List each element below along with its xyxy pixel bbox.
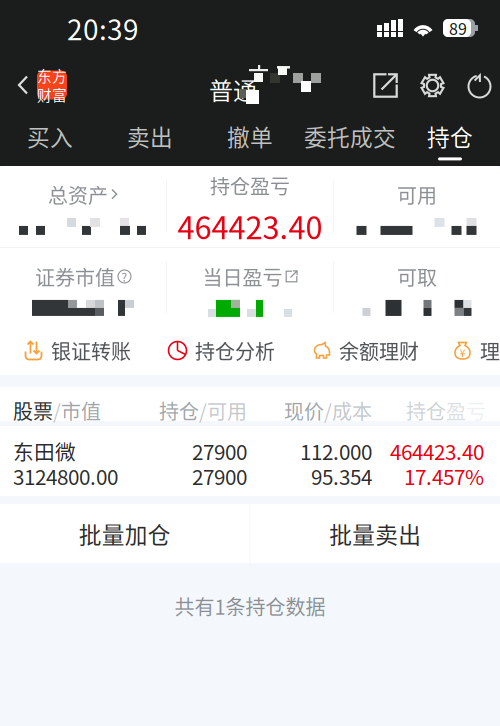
staticText: 亏 — [466, 396, 486, 425]
button[interactable]: 余额理财 — [312, 326, 419, 375]
button[interactable]: ¥ — [453, 326, 500, 375]
staticText: / — [199, 396, 207, 425]
button[interactable]: 可用 — [334, 166, 500, 247]
staticText: 东田微 — [13, 436, 76, 466]
staticText: 持仓 — [427, 120, 473, 152]
button[interactable]: Refresh — [467, 73, 492, 98]
staticText: 批量加仓 — [79, 517, 171, 550]
staticText: 市值 — [61, 396, 101, 425]
button[interactable]: 持仓 — [400, 114, 500, 166]
staticText: 成本 — [332, 396, 372, 425]
staticText: 理财 — [480, 336, 500, 365]
button[interactable]: 持仓 — [127, 396, 247, 425]
staticText: 可用 — [397, 180, 437, 209]
button[interactable]: 批量加仓 — [0, 504, 249, 563]
staticText: 持仓分析 — [195, 336, 275, 365]
button[interactable]: 持仓 — [366, 396, 486, 425]
staticText: 464423.40 — [177, 204, 322, 248]
staticText: 持仓盈亏 — [210, 171, 290, 200]
staticText: 95.354 — [311, 461, 372, 491]
staticText: 财富 — [37, 84, 67, 105]
staticText: 17.457% — [404, 461, 484, 491]
staticText: / — [324, 396, 332, 425]
staticText: 现价 — [284, 396, 324, 425]
button[interactable]: Settings — [420, 73, 445, 98]
button[interactable]: 持仓盈亏 — [167, 166, 333, 247]
staticText: 买入 — [27, 120, 73, 152]
staticText: 当日盈亏 — [202, 262, 282, 291]
staticText: 464423.40 — [390, 436, 484, 466]
staticText: 总资产 — [48, 180, 108, 209]
staticText: 卖出 — [127, 120, 173, 152]
staticText: 证券市值 — [35, 262, 115, 291]
staticText: 股票 — [13, 396, 53, 425]
staticText: 委托成交 — [304, 120, 396, 152]
button[interactable]: 证券市值 — [0, 248, 166, 326]
staticText: 27900 — [192, 461, 247, 491]
button[interactable]: 可取 — [334, 248, 500, 326]
staticText: 持仓 — [159, 396, 199, 425]
button[interactable]: 委托成交 — [300, 114, 400, 166]
staticText: ¥ — [459, 345, 465, 360]
button[interactable]: 持仓分析 — [168, 326, 275, 375]
button[interactable]: Share — [373, 73, 398, 98]
button[interactable]: 东田微 — [0, 426, 500, 496]
staticText: 持仓 — [406, 396, 446, 425]
staticText: 银证转账 — [51, 336, 131, 365]
button[interactable]: 撤单 — [200, 114, 300, 166]
staticText: 可用 — [207, 396, 247, 425]
button[interactable]: 买入 — [0, 114, 100, 166]
staticText: 20:39 — [67, 8, 139, 48]
staticText: 89 — [449, 16, 467, 40]
staticText: 普通 — [209, 72, 257, 107]
staticText: 共有1条持仓数据 — [174, 591, 325, 620]
staticText: 可取 — [397, 262, 437, 291]
button[interactable]: 银证转账 — [24, 326, 131, 375]
button[interactable]: 批量卖出 — [250, 504, 500, 563]
staticText: ? — [121, 268, 127, 285]
button[interactable]: 总资产 — [0, 166, 166, 247]
staticText: 112.000 — [300, 436, 372, 466]
staticText: 批量卖出 — [329, 517, 421, 550]
staticText: 撤单 — [227, 120, 273, 152]
staticText: 东方 — [37, 65, 67, 86]
button[interactable]: 现价 — [252, 396, 372, 425]
staticText: 3124800.00 — [13, 461, 118, 491]
staticText: 盈 — [446, 396, 466, 425]
button[interactable]: Back — [0, 56, 73, 114]
staticText: 余额理财 — [339, 336, 419, 365]
button[interactable]: 卖出 — [100, 114, 200, 166]
staticText: 27900 — [192, 436, 247, 466]
button[interactable]: 当日盈亏 — [167, 248, 333, 326]
staticText: / — [53, 396, 61, 425]
